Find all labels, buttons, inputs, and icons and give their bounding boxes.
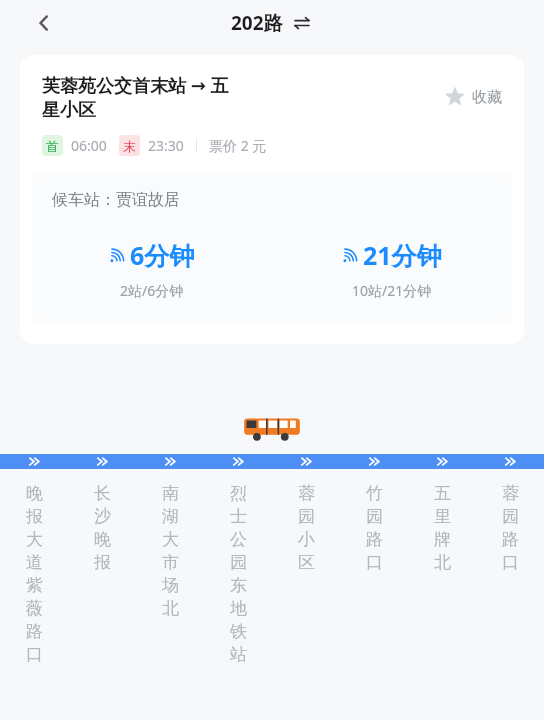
staticText: 2站/6分钟 [120, 281, 184, 300]
button[interactable]: 长 [68, 483, 136, 575]
staticText: 202路 [231, 10, 283, 36]
staticText: 东 [230, 575, 247, 596]
staticText: 口 [26, 644, 43, 665]
staticText: 长 [94, 483, 111, 504]
staticText: 地 [230, 598, 247, 619]
staticText: 湖 [162, 506, 179, 527]
button[interactable]: 21分钟 [272, 238, 512, 300]
staticText: 报 [94, 552, 111, 573]
button[interactable]: Back [24, 3, 64, 43]
staticText: 公 [230, 529, 247, 550]
staticText: 21分钟 [363, 238, 442, 272]
staticText: 牌 [434, 529, 451, 550]
staticText: 园 [230, 552, 247, 573]
button[interactable]: 蓉 [476, 483, 544, 575]
staticText: 紫 [26, 575, 43, 596]
staticText: 大 [162, 529, 179, 550]
staticText: 蓉 [298, 483, 315, 504]
staticText: 道 [26, 552, 43, 573]
staticText: 南 [162, 483, 179, 504]
staticText: 收藏 [472, 88, 502, 107]
staticText: 大 [26, 529, 43, 550]
staticText: 薇 [26, 598, 43, 619]
button[interactable]: 五 [408, 483, 476, 575]
staticText: 口 [502, 552, 519, 573]
staticText: 区 [298, 552, 315, 573]
staticText: 10站/21分钟 [352, 281, 432, 300]
staticText: 北 [162, 598, 179, 619]
button[interactable]: 候车站：贾谊故居 [32, 172, 512, 324]
staticText: 晚 [26, 483, 43, 504]
staticText: 烈 [230, 483, 247, 504]
staticText: 芙蓉苑公交首末站 → 五星小区 [42, 73, 243, 121]
button[interactable]: Switch direction [291, 12, 313, 34]
staticText: 园 [366, 506, 383, 527]
staticText: 6分钟 [130, 238, 195, 272]
staticText: 路 [502, 529, 519, 550]
staticText: 园 [298, 506, 315, 527]
staticText: 五 [434, 483, 451, 504]
staticText: 士 [230, 506, 247, 527]
staticText: 蓉 [502, 483, 519, 504]
button[interactable]: 6分钟 [32, 238, 272, 300]
staticText: 口 [366, 552, 383, 573]
staticText: 园 [502, 506, 519, 527]
staticText: 晚 [94, 529, 111, 550]
button[interactable]: 竹 [340, 483, 408, 575]
button[interactable]: 蓉 [272, 483, 340, 575]
staticText: 报 [26, 506, 43, 527]
staticText: 06:00 [71, 136, 107, 155]
staticText: 候车站：贾谊故居 [52, 190, 180, 210]
staticText: 首 [46, 138, 59, 154]
staticText: 市 [162, 552, 179, 573]
staticText: 铁 [230, 621, 247, 642]
staticText: 23:30 [148, 136, 184, 155]
button[interactable]: 烈 [204, 483, 272, 667]
button[interactable]: 收藏 [444, 86, 502, 108]
button[interactable]: 晚 [0, 483, 68, 667]
staticText: 路 [366, 529, 383, 550]
staticText: 末 [123, 138, 136, 154]
staticText: 北 [434, 552, 451, 573]
staticText: 里 [434, 506, 451, 527]
staticText: 竹 [366, 483, 383, 504]
staticText: 小 [298, 529, 315, 550]
button[interactable]: 芙蓉苑公交首末站 → 五星小区 [20, 55, 524, 344]
staticText: 路 [26, 621, 43, 642]
staticText: 场 [162, 575, 179, 596]
staticText: 站 [230, 644, 247, 665]
staticText: 票价 2 元 [209, 136, 267, 155]
button[interactable]: 南 [136, 483, 204, 621]
staticText: 沙 [94, 506, 111, 527]
